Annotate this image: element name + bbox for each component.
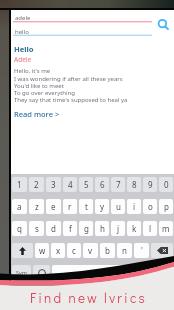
staticText: p	[164, 201, 169, 212]
button[interactable]: u	[111, 199, 125, 214]
staticText: u	[116, 201, 121, 212]
staticText: Hello	[14, 44, 34, 54]
button[interactable]: l	[143, 221, 157, 236]
staticText: 8	[132, 179, 137, 190]
staticText: g	[84, 223, 89, 234]
button[interactable]: Search	[154, 15, 173, 34]
staticText: Adele	[14, 55, 32, 64]
staticText: a	[17, 201, 22, 212]
button[interactable]: .	[131, 265, 148, 280]
staticText: Hello, it's me I was wondering if after …	[14, 67, 128, 103]
staticText: .	[139, 268, 141, 278]
staticText: v	[88, 245, 93, 256]
staticText: k	[132, 223, 137, 234]
button[interactable]: m	[159, 221, 173, 236]
button[interactable]: q	[12, 221, 27, 236]
button[interactable]: Read more >	[14, 109, 60, 119]
staticText: 5	[84, 179, 89, 190]
button[interactable]: g	[79, 221, 93, 236]
button[interactable]: f	[63, 221, 77, 236]
button[interactable]: Space	[52, 265, 129, 280]
button[interactable]: Backspace	[151, 243, 173, 258]
button[interactable]: 2	[29, 177, 44, 192]
staticText: 2	[34, 179, 39, 190]
button[interactable]: 8	[127, 177, 141, 192]
staticText: 9	[148, 179, 153, 190]
button[interactable]: r	[63, 199, 77, 214]
staticText: o	[148, 201, 153, 212]
button[interactable]: 0	[159, 177, 173, 192]
staticText: 0	[164, 179, 169, 190]
staticText: 4	[68, 179, 73, 190]
button[interactable]: Sym	[12, 265, 31, 280]
staticText: n	[122, 245, 127, 256]
staticText: '	[141, 245, 143, 256]
staticText: b	[105, 245, 110, 256]
staticText: 1	[17, 179, 22, 190]
staticText: m	[162, 223, 170, 234]
button[interactable]: 4	[63, 177, 77, 192]
button[interactable]: 9	[143, 177, 157, 192]
button[interactable]: 7	[111, 177, 125, 192]
staticText: hello	[15, 28, 29, 36]
button[interactable]: j	[111, 221, 125, 236]
button[interactable]: k	[127, 221, 141, 236]
staticText: s	[35, 223, 39, 234]
staticText: l	[149, 223, 152, 234]
button[interactable]: w	[35, 243, 49, 258]
staticText: z	[35, 201, 39, 212]
staticText: q	[17, 223, 22, 234]
button[interactable]: c	[67, 243, 81, 258]
staticText: 7	[116, 179, 121, 190]
button[interactable]: t	[79, 199, 93, 214]
button[interactable]: 3	[46, 177, 61, 192]
button[interactable]: v	[83, 243, 98, 258]
staticText: r	[68, 201, 72, 212]
staticText: h	[100, 223, 105, 234]
button[interactable]: a	[12, 199, 27, 214]
button[interactable]: x	[51, 243, 65, 258]
staticText: adele	[15, 14, 31, 22]
button[interactable]: i	[127, 199, 141, 214]
staticText: i	[133, 201, 136, 212]
staticText: f	[69, 223, 72, 234]
button[interactable]: d	[46, 221, 61, 236]
button[interactable]: 5	[79, 177, 93, 192]
staticText: y	[100, 201, 105, 212]
staticText: Find new lyrics	[30, 289, 148, 303]
staticText: d	[51, 223, 56, 234]
staticText: j	[117, 223, 120, 234]
staticText: Read more >	[14, 109, 60, 119]
staticText: c	[72, 245, 76, 256]
staticText: 6	[100, 179, 105, 190]
button[interactable]: 1	[12, 177, 27, 192]
staticText: t	[85, 201, 88, 212]
button[interactable]: b	[100, 243, 115, 258]
staticText: Sym	[16, 269, 27, 276]
button[interactable]: s	[29, 221, 44, 236]
staticText: x	[56, 245, 61, 256]
staticText: w	[39, 245, 46, 256]
button[interactable]: 6	[95, 177, 109, 192]
button[interactable]: e	[46, 199, 61, 214]
button[interactable]: o	[143, 199, 157, 214]
button[interactable]: z	[29, 199, 44, 214]
staticText: 3	[51, 179, 56, 190]
button[interactable]: '	[134, 243, 149, 258]
button[interactable]: Shift	[12, 243, 33, 258]
button[interactable]: h	[95, 221, 109, 236]
button[interactable]: p	[159, 199, 173, 214]
button[interactable]: n	[117, 243, 132, 258]
button[interactable]: Emoji	[33, 265, 50, 280]
button[interactable]: Enter	[150, 265, 173, 280]
staticText: e	[51, 201, 56, 212]
button[interactable]: y	[95, 199, 109, 214]
